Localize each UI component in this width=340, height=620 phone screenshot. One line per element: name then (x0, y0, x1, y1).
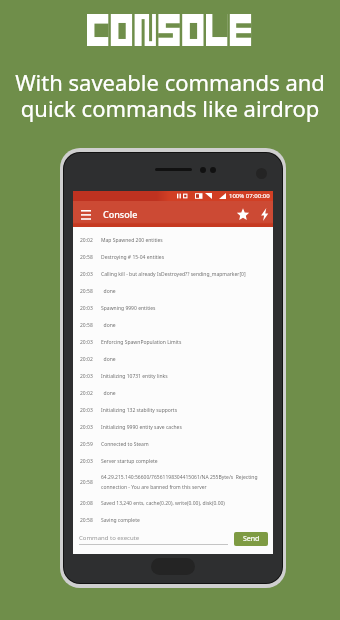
staticText: 20:59 (80, 441, 93, 448)
staticText: Command to execute (79, 534, 140, 542)
staticText: 20:03 (80, 305, 93, 312)
staticText: done (101, 356, 116, 363)
staticText: Saving complete (101, 517, 140, 524)
staticText: Destroying # 15-04 entities (101, 254, 165, 261)
button[interactable]: Quick commands (256, 206, 272, 222)
staticText: 20:58 (80, 288, 93, 295)
staticText: Enforcing SpawnPopulation Limits (101, 339, 182, 346)
staticText: Server startup complete (101, 458, 158, 465)
staticText: 20:08 (80, 500, 93, 507)
button[interactable]: Menu (80, 209, 91, 220)
staticText: Send (243, 534, 260, 544)
staticText: connection - You are banned from this se… (101, 484, 207, 491)
staticText: With saveable commands and quick command… (15, 67, 325, 124)
staticText: 20:58 (80, 517, 93, 524)
staticText: 20:58 (80, 254, 93, 261)
staticText: 20:03 (80, 339, 93, 346)
staticText: Spawning 9990 entities (101, 305, 156, 312)
staticText: Console (103, 208, 138, 220)
staticText: Initializing 9990 entity save caches (101, 424, 182, 431)
staticText: done (101, 322, 116, 329)
staticText: 20:03 (80, 271, 93, 278)
staticText: 20:03 (80, 458, 93, 465)
button[interactable]: Favorite (235, 206, 251, 222)
staticText: 20:03 (80, 407, 93, 414)
staticText: 100% 07:00:00 (229, 192, 270, 200)
staticText: 20:03 (80, 373, 93, 380)
staticText: Map Spawned 200 entities (101, 237, 163, 244)
staticText: 20:58 (80, 322, 93, 329)
staticText: Initializing 132 stability supports (101, 407, 178, 414)
staticText: done (101, 288, 116, 295)
staticText: 64.29.215.140:56600/76561198304415061/NA… (101, 474, 258, 481)
staticText: Connected to Steam (101, 441, 149, 448)
staticText: 20:03 (80, 424, 93, 431)
staticText: Calling kill - but already IsDestroyed??… (101, 271, 246, 278)
staticText: Saved 13,240 ents, cache(0.20), write(0.… (101, 500, 225, 507)
button[interactable]: Send (234, 532, 268, 546)
staticText: 20:02 (80, 237, 93, 244)
staticText: Initializing 10731 entity links (101, 373, 168, 380)
staticText: done (101, 390, 116, 397)
staticText: 20:02 (80, 356, 93, 363)
staticText: 20:58 (80, 479, 93, 486)
staticText: 20:02 (80, 390, 93, 397)
